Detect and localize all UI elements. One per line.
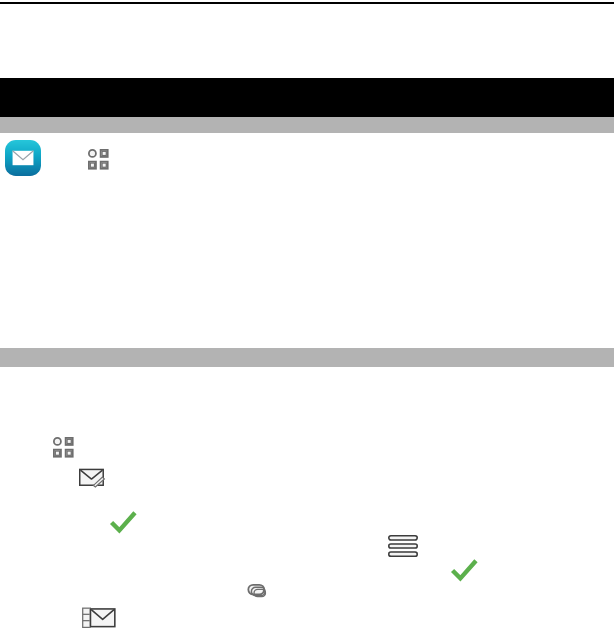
- button[interactable]: Attach: [247, 581, 269, 602]
- button[interactable]: Apps: [88, 149, 112, 170]
- button[interactable]: Done: [110, 511, 136, 533]
- button[interactable]: Apps: [53, 437, 77, 458]
- button[interactable]: Done: [451, 559, 477, 581]
- button[interactable]: Mail folder: [82, 604, 117, 628]
- button[interactable]: Mail: [5, 140, 41, 176]
- button[interactable]: Compose mail: [79, 466, 111, 493]
- button[interactable]: Menu: [388, 535, 418, 557]
